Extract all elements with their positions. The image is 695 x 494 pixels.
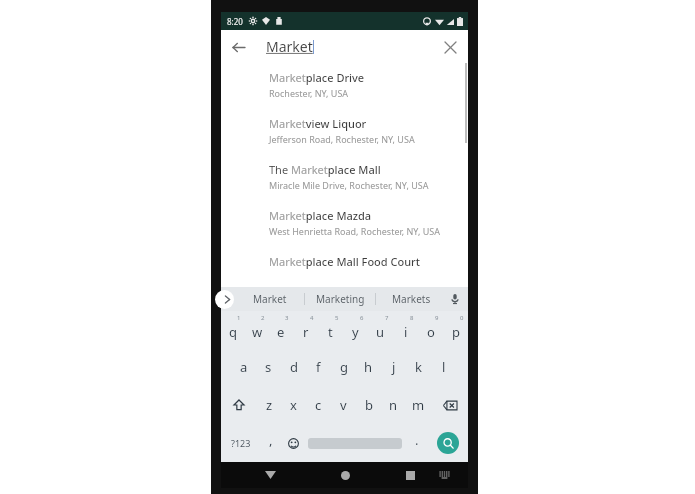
staticText: m	[412, 396, 425, 414]
staticText: k	[415, 358, 422, 376]
staticText: 6	[360, 314, 364, 322]
button[interactable]: Marketplace Drive	[221, 63, 468, 109]
staticText: x	[290, 396, 297, 414]
button[interactable]: Marketplace Mall Food Court Entranc	[221, 247, 468, 287]
button[interactable]: n	[381, 386, 406, 424]
staticText: h	[364, 358, 373, 376]
staticText: The Marketplace Mall	[269, 162, 381, 177]
button[interactable]: w	[245, 311, 269, 348]
button[interactable]: Voice input	[446, 290, 464, 308]
button[interactable]: f	[306, 348, 331, 386]
staticText: a	[240, 358, 248, 376]
button[interactable]: d	[281, 348, 306, 386]
staticText: Miracle Mile Drive, Rochester, NY, USA	[269, 179, 429, 191]
button[interactable]: Switch keyboard	[434, 465, 454, 485]
button[interactable]: v	[331, 386, 356, 424]
staticText: 2	[261, 314, 265, 322]
button[interactable]: i	[393, 311, 418, 348]
staticText: o	[427, 323, 435, 341]
button[interactable]: s	[256, 348, 281, 386]
button[interactable]: Marketing	[305, 287, 375, 311]
staticText: i	[404, 323, 408, 341]
staticText: Jefferson Road, Rochester, NY, USA	[269, 133, 415, 145]
staticText: c	[315, 396, 322, 414]
button[interactable]: u	[368, 311, 393, 348]
staticText: t	[328, 323, 333, 341]
button[interactable]: c	[306, 386, 331, 424]
button[interactable]: Space	[304, 424, 406, 462]
button[interactable]: Home	[334, 464, 356, 486]
staticText: y	[352, 323, 359, 341]
staticText: n	[389, 396, 398, 414]
staticText: j	[392, 358, 396, 376]
button[interactable]: Back	[224, 33, 252, 61]
button[interactable]: x	[281, 386, 306, 424]
button[interactable]: Back	[259, 464, 281, 486]
button[interactable]: t	[318, 311, 343, 348]
button[interactable]: Search	[437, 432, 459, 454]
button[interactable]: Markets	[376, 287, 446, 311]
staticText: l	[442, 358, 446, 376]
staticText: Marketing	[316, 292, 365, 306]
staticText: u	[376, 323, 385, 341]
staticText: 5	[335, 314, 339, 322]
button[interactable]: y	[343, 311, 368, 348]
staticText: ?123	[231, 437, 251, 449]
staticText: 4	[310, 314, 314, 322]
staticText: Marketview Liquor	[269, 116, 367, 131]
staticText: Marketplace Mazda	[269, 208, 372, 223]
button[interactable]: r	[293, 311, 318, 348]
button[interactable]: e	[269, 311, 293, 348]
staticText: d	[290, 358, 298, 376]
button[interactable]: Marketview Liquor	[221, 109, 468, 155]
staticText: v	[340, 396, 347, 414]
staticText: Marketplace Mall Food Court Entranc	[269, 254, 458, 269]
button[interactable]: b	[356, 386, 381, 424]
button[interactable]: .	[406, 424, 428, 462]
button[interactable]: Market	[235, 287, 304, 311]
staticText: 8:20	[227, 16, 243, 27]
button[interactable]: h	[356, 348, 381, 386]
button[interactable]: More suggestions	[215, 290, 234, 309]
button[interactable]: a	[232, 348, 256, 386]
staticText: w	[252, 323, 263, 341]
button[interactable]: k	[406, 348, 431, 386]
button[interactable]: The Marketplace Mall	[221, 155, 468, 201]
staticText: Market	[266, 37, 313, 56]
button[interactable]: p	[443, 311, 468, 348]
button[interactable]: ,	[260, 424, 282, 462]
button[interactable]: z	[257, 386, 281, 424]
button[interactable]: j	[381, 348, 406, 386]
button[interactable]: g	[331, 348, 356, 386]
button[interactable]: Emoji	[282, 424, 304, 462]
button[interactable]: ?123	[221, 424, 260, 462]
staticText: g	[340, 358, 348, 376]
staticText: 7	[385, 314, 389, 322]
button[interactable]: m	[406, 386, 431, 424]
staticText: 1	[237, 314, 241, 322]
button[interactable]: l	[431, 348, 456, 386]
button[interactable]: Recents	[399, 464, 421, 486]
staticText: f	[316, 358, 321, 376]
staticText: 9	[435, 314, 439, 322]
staticText: 3	[285, 314, 289, 322]
button[interactable]: Marketplace Mazda	[221, 201, 468, 247]
staticText: Markets	[392, 292, 431, 306]
staticText: q	[229, 323, 237, 341]
staticText: p	[452, 323, 460, 341]
staticText: z	[266, 396, 273, 414]
staticText: Marketplace Drive	[269, 70, 365, 85]
staticText: West Henrietta Road, Rochester, NY, USA	[269, 225, 440, 237]
staticText: 8	[410, 314, 414, 322]
staticText: s	[265, 358, 272, 376]
button[interactable]: Clear	[436, 33, 464, 61]
button[interactable]: q	[221, 311, 245, 348]
staticText: e	[277, 323, 285, 341]
button[interactable]: Shift	[221, 386, 257, 424]
staticText: .	[415, 431, 419, 449]
staticText: b	[365, 396, 373, 414]
staticText: Market	[253, 292, 287, 306]
staticText: Rochester, NY, USA	[269, 87, 349, 99]
button[interactable]: Backspace	[431, 386, 468, 424]
button[interactable]: o	[418, 311, 443, 348]
